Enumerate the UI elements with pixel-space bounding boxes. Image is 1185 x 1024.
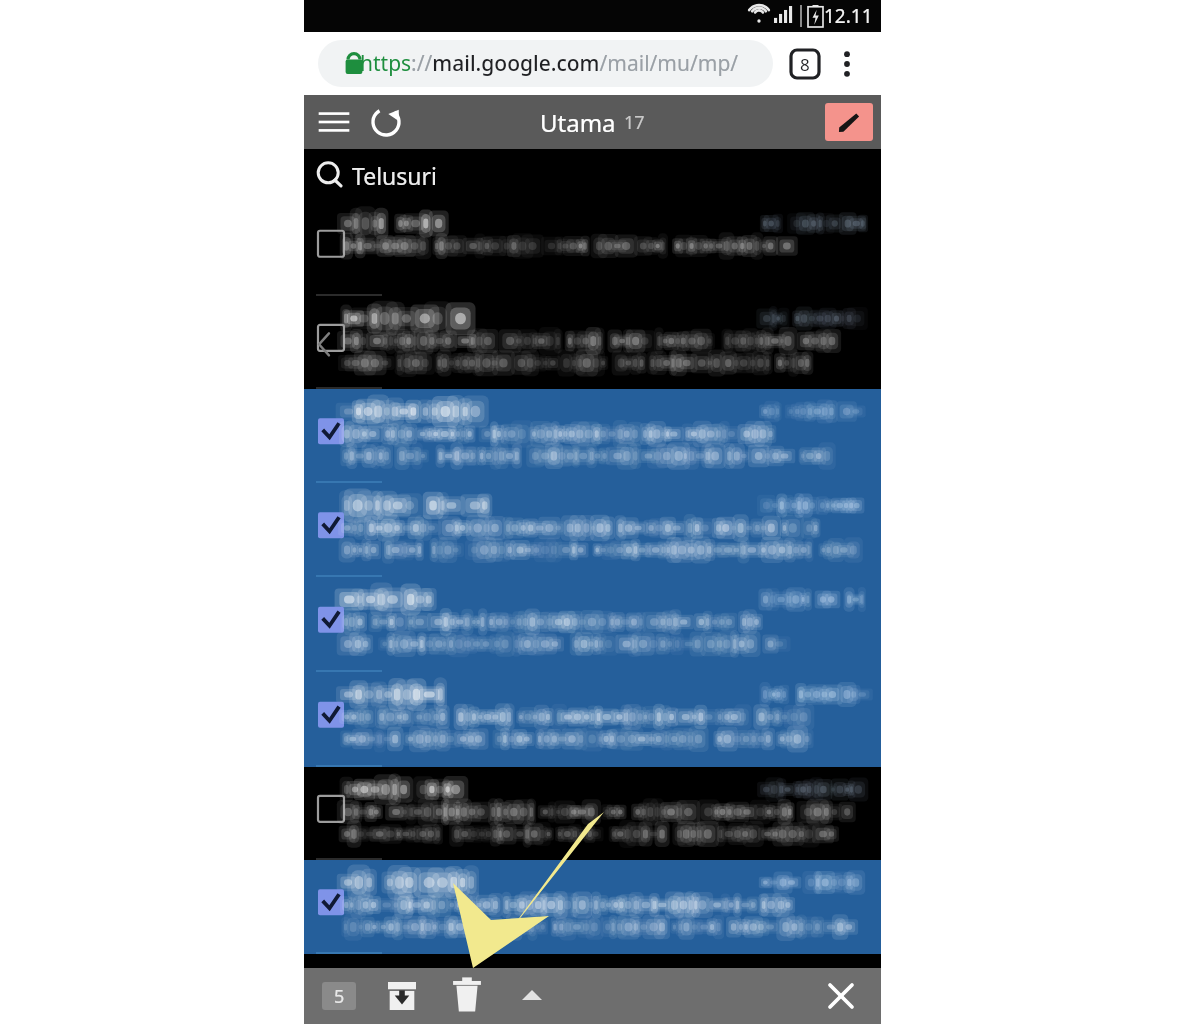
staticText: 17 <box>624 110 645 135</box>
button[interactable]: Close <box>819 974 863 1018</box>
button[interactable]: More options <box>829 46 865 82</box>
button[interactable]: Selected email <box>304 672 881 767</box>
button[interactable]: 5 <box>322 982 356 1010</box>
button[interactable]: https://mail.google.com/mail/mu/mp/661/#… <box>318 40 773 87</box>
button[interactable]: Menu <box>312 100 356 144</box>
button[interactable]: Compose <box>825 103 873 141</box>
button[interactable]: Telusuri <box>304 149 881 201</box>
button[interactable]: Delete <box>445 974 489 1018</box>
button[interactable]: Tabs: 8 <box>787 46 823 82</box>
staticText: Telusuri <box>352 160 437 191</box>
staticText: 12.11 <box>824 3 873 29</box>
button[interactable]: Email <box>304 954 881 968</box>
button[interactable]: More actions <box>510 974 554 1018</box>
button[interactable]: Selected email <box>304 389 881 483</box>
button[interactable]: Selected email <box>304 860 881 954</box>
staticText: https://mail.google.com/mail/mu/mp/661/#… <box>360 49 767 78</box>
staticText: 8 <box>800 53 810 76</box>
button[interactable]: Selected email <box>304 577 881 672</box>
button[interactable]: Email <box>304 767 881 860</box>
button[interactable]: Archive <box>380 974 424 1018</box>
button[interactable]: Email <box>304 201 881 296</box>
staticText: Utama <box>540 106 616 139</box>
button[interactable]: Email <box>304 296 881 389</box>
staticText: 5 <box>334 984 345 1009</box>
button[interactable]: Refresh <box>364 100 408 144</box>
button[interactable]: Selected email <box>304 483 881 577</box>
